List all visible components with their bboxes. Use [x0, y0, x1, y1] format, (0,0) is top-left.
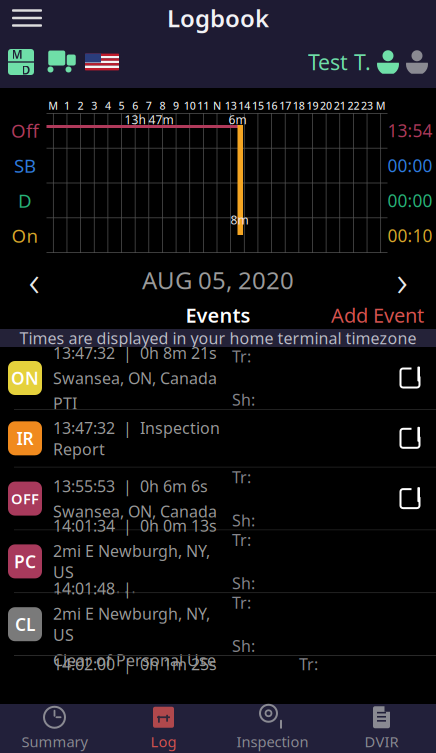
button[interactable]: CL — [0, 593, 436, 656]
staticText: 14:01:34 | 0h 0m 13s — [53, 515, 217, 536]
staticText: 9 — [173, 98, 179, 113]
button[interactable]: Co-driver — [406, 49, 428, 74]
staticText: Sh: — [232, 389, 255, 410]
staticText: Test T. — [308, 48, 371, 76]
staticText: 13:55:53 | 0h 6m 6s — [53, 475, 208, 497]
button[interactable]: IR — [0, 410, 436, 468]
staticText: 22 — [347, 98, 359, 113]
staticText: IR — [16, 427, 33, 450]
staticText: 21 — [334, 98, 346, 113]
button[interactable]: Vehicle — [47, 51, 77, 72]
staticText: Off — [11, 118, 39, 143]
button[interactable]: Next day — [368, 259, 436, 301]
staticText: 4 — [105, 98, 111, 113]
button[interactable]: Country — [85, 53, 119, 70]
staticText: 2mi E Newburgh, NY, US — [53, 603, 210, 645]
staticText: ON — [11, 366, 39, 389]
staticText: 16 — [266, 98, 278, 113]
staticText: › — [396, 252, 407, 308]
staticText: CL — [15, 613, 35, 636]
button[interactable]: Log — [109, 704, 218, 753]
staticText: Logbook — [167, 2, 269, 34]
staticText: 6m — [228, 111, 246, 127]
button[interactable]: Inspection — [218, 704, 327, 753]
staticText: 00:00 — [387, 189, 432, 212]
staticText: Tr: — [232, 529, 251, 550]
staticText: Summary — [21, 732, 87, 751]
staticText: 2mi E Newburgh, NY, US — [53, 540, 210, 583]
staticText: 5 — [118, 98, 124, 113]
staticText: 15 — [252, 98, 264, 113]
staticText: Times are displayed in your home termina… — [19, 327, 416, 349]
staticText: M — [11, 46, 22, 62]
staticText: Tr: — [232, 592, 251, 613]
staticText: Sh: — [232, 572, 255, 594]
staticText: Events — [185, 302, 250, 328]
staticText: 13:47:32 | Inspection Report — [53, 417, 220, 460]
staticText: 6 — [132, 98, 138, 113]
staticText: Clear of Personal Use — [53, 649, 216, 671]
button[interactable]: Previous day — [0, 259, 68, 301]
staticText: 7 — [146, 98, 152, 113]
staticText: Tr: — [232, 346, 251, 367]
staticText: PTI — [53, 393, 77, 414]
staticText: Sh: — [232, 635, 255, 656]
staticText: DVIR — [364, 732, 398, 751]
staticText: 23 — [361, 98, 373, 113]
button[interactable]: Menu — [0, 0, 54, 36]
staticText: M — [376, 98, 386, 113]
button[interactable]: Add Event — [323, 297, 432, 333]
staticText: 20 — [320, 98, 332, 113]
staticText: 13:54 — [387, 119, 432, 142]
staticText: D — [18, 188, 32, 213]
staticText: 00:00 — [387, 154, 432, 177]
staticText: Tr: — [299, 653, 318, 675]
staticText: 13 — [225, 98, 237, 113]
staticText: 14 — [238, 98, 250, 113]
staticText: 11 — [197, 98, 209, 113]
staticText: SB — [14, 153, 36, 178]
staticText: N — [213, 98, 221, 113]
staticText: Log — [150, 732, 176, 751]
staticText: 13h 47m — [124, 111, 173, 127]
button[interactable]: Driver mode — [8, 49, 34, 75]
staticText: 3 — [91, 98, 97, 113]
button[interactable]: DVIR — [327, 704, 436, 753]
staticText: Swansea, ON, Canada — [53, 367, 217, 389]
staticText: On — [11, 223, 38, 248]
staticText: 10 — [184, 98, 196, 113]
button[interactable]: PC — [0, 530, 436, 593]
button[interactable]: OFF — [0, 468, 436, 530]
staticText: 8 — [159, 98, 165, 113]
staticText: OFF — [11, 489, 39, 508]
staticText: 13:47:32 | 0h 8m 21s — [53, 342, 217, 363]
staticText: 19 — [306, 98, 318, 113]
staticText: 14:01:48 | — [53, 578, 132, 599]
staticText: 1 — [64, 98, 70, 113]
button[interactable]: ON — [0, 347, 436, 410]
button[interactable]: Summary — [0, 704, 109, 753]
staticText: Tr: — [232, 466, 251, 488]
staticText: D — [21, 62, 30, 78]
staticText: Sh: — [232, 510, 255, 531]
staticText: Inspection — [236, 732, 308, 751]
staticText: Personal Use — [53, 587, 153, 608]
staticText: 18 — [293, 98, 305, 113]
staticText: 00:10 — [387, 224, 432, 247]
staticText: 8m — [230, 212, 248, 228]
staticText: 14:02:00 | 0h 1m 25s — [53, 653, 217, 675]
staticText: 17 — [279, 98, 291, 113]
staticText: AUG 05, 2020 — [142, 264, 294, 296]
staticText: ‹ — [28, 252, 39, 308]
button[interactable]: Test T. — [308, 48, 399, 76]
staticText: Add Event — [331, 302, 424, 328]
staticText: Swansea, ON, Canada — [53, 501, 217, 522]
staticText: M — [48, 98, 58, 113]
staticText: PC — [14, 550, 36, 573]
staticText: 2 — [78, 98, 84, 113]
